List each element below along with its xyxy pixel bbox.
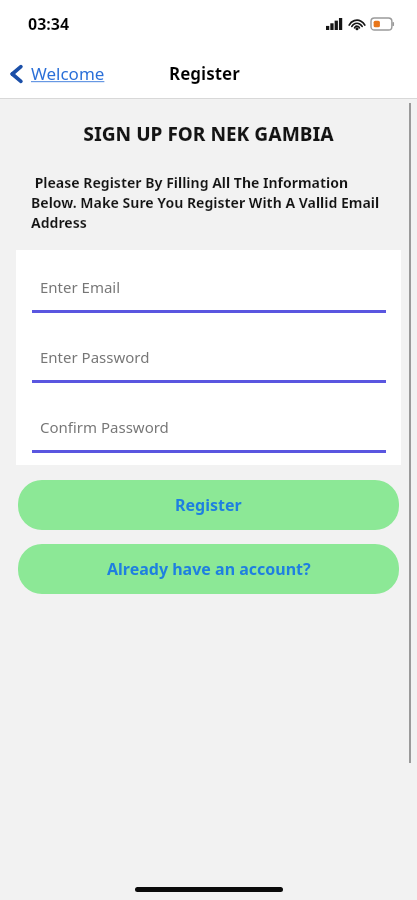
other: Back xyxy=(10,64,24,84)
staticText: Already have an account? xyxy=(107,558,311,580)
staticText: Enter Email xyxy=(40,277,121,297)
staticText: 03:34 xyxy=(28,13,70,35)
staticText: Confirm Password xyxy=(40,417,169,437)
staticText: Register xyxy=(175,494,242,516)
button[interactable]: Back xyxy=(0,56,115,91)
staticText: Please Register By Filling All The Infor… xyxy=(31,173,391,232)
button[interactable]: Enter Password xyxy=(32,340,386,383)
button[interactable]: Already have an account? xyxy=(18,544,399,594)
staticText: Welcome xyxy=(31,62,105,85)
staticText: SIGN UP FOR NEK GAMBIA xyxy=(0,121,417,147)
staticText: Register xyxy=(169,62,240,85)
staticText: Enter Password xyxy=(40,347,150,367)
button[interactable]: Register xyxy=(18,480,399,530)
button[interactable]: Enter Email xyxy=(32,270,386,313)
button[interactable]: Confirm Password xyxy=(32,410,386,453)
